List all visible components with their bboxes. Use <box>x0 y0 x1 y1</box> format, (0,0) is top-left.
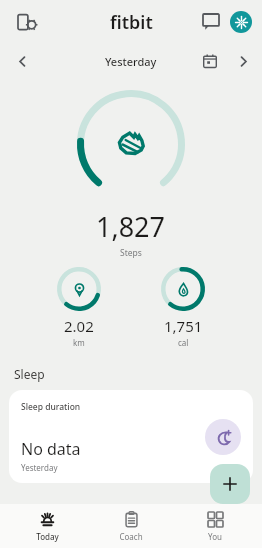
button[interactable]: Previous day <box>8 47 36 75</box>
button[interactable]: Sleep duration <box>9 390 253 483</box>
staticText: Yesterday <box>21 462 58 473</box>
staticText: Sleep duration <box>21 401 81 413</box>
button[interactable]: Add <box>210 464 250 504</box>
staticText: 2.02 <box>64 316 94 336</box>
button[interactable]: Coach <box>94 504 168 548</box>
staticText: Yesterday <box>105 54 157 69</box>
button[interactable]: 2.02 km <box>53 267 105 348</box>
button[interactable]: 1,751 cal <box>157 267 209 348</box>
staticText: cal <box>178 337 189 348</box>
button[interactable]: Steps progress <box>77 90 185 198</box>
staticText: Steps <box>120 247 142 259</box>
button[interactable]: Today <box>10 504 84 548</box>
staticText: You <box>208 531 222 542</box>
button[interactable]: Messages <box>196 7 226 37</box>
button[interactable]: Calendar <box>196 47 224 75</box>
button[interactable]: Profile <box>230 11 252 33</box>
staticText: km <box>73 337 85 348</box>
staticText: Sleep <box>14 366 262 382</box>
staticText: 1,827 <box>96 208 166 245</box>
button[interactable]: Next day <box>230 48 256 74</box>
staticText: Activity <box>14 505 262 521</box>
staticText: fitbit <box>110 10 153 35</box>
staticText: 1,751 <box>164 316 203 336</box>
staticText: Today <box>36 531 59 542</box>
button[interactable]: You <box>178 504 252 548</box>
staticText: No data <box>21 438 81 460</box>
staticText: Coach <box>119 531 143 542</box>
button[interactable]: Device settings <box>10 5 44 39</box>
